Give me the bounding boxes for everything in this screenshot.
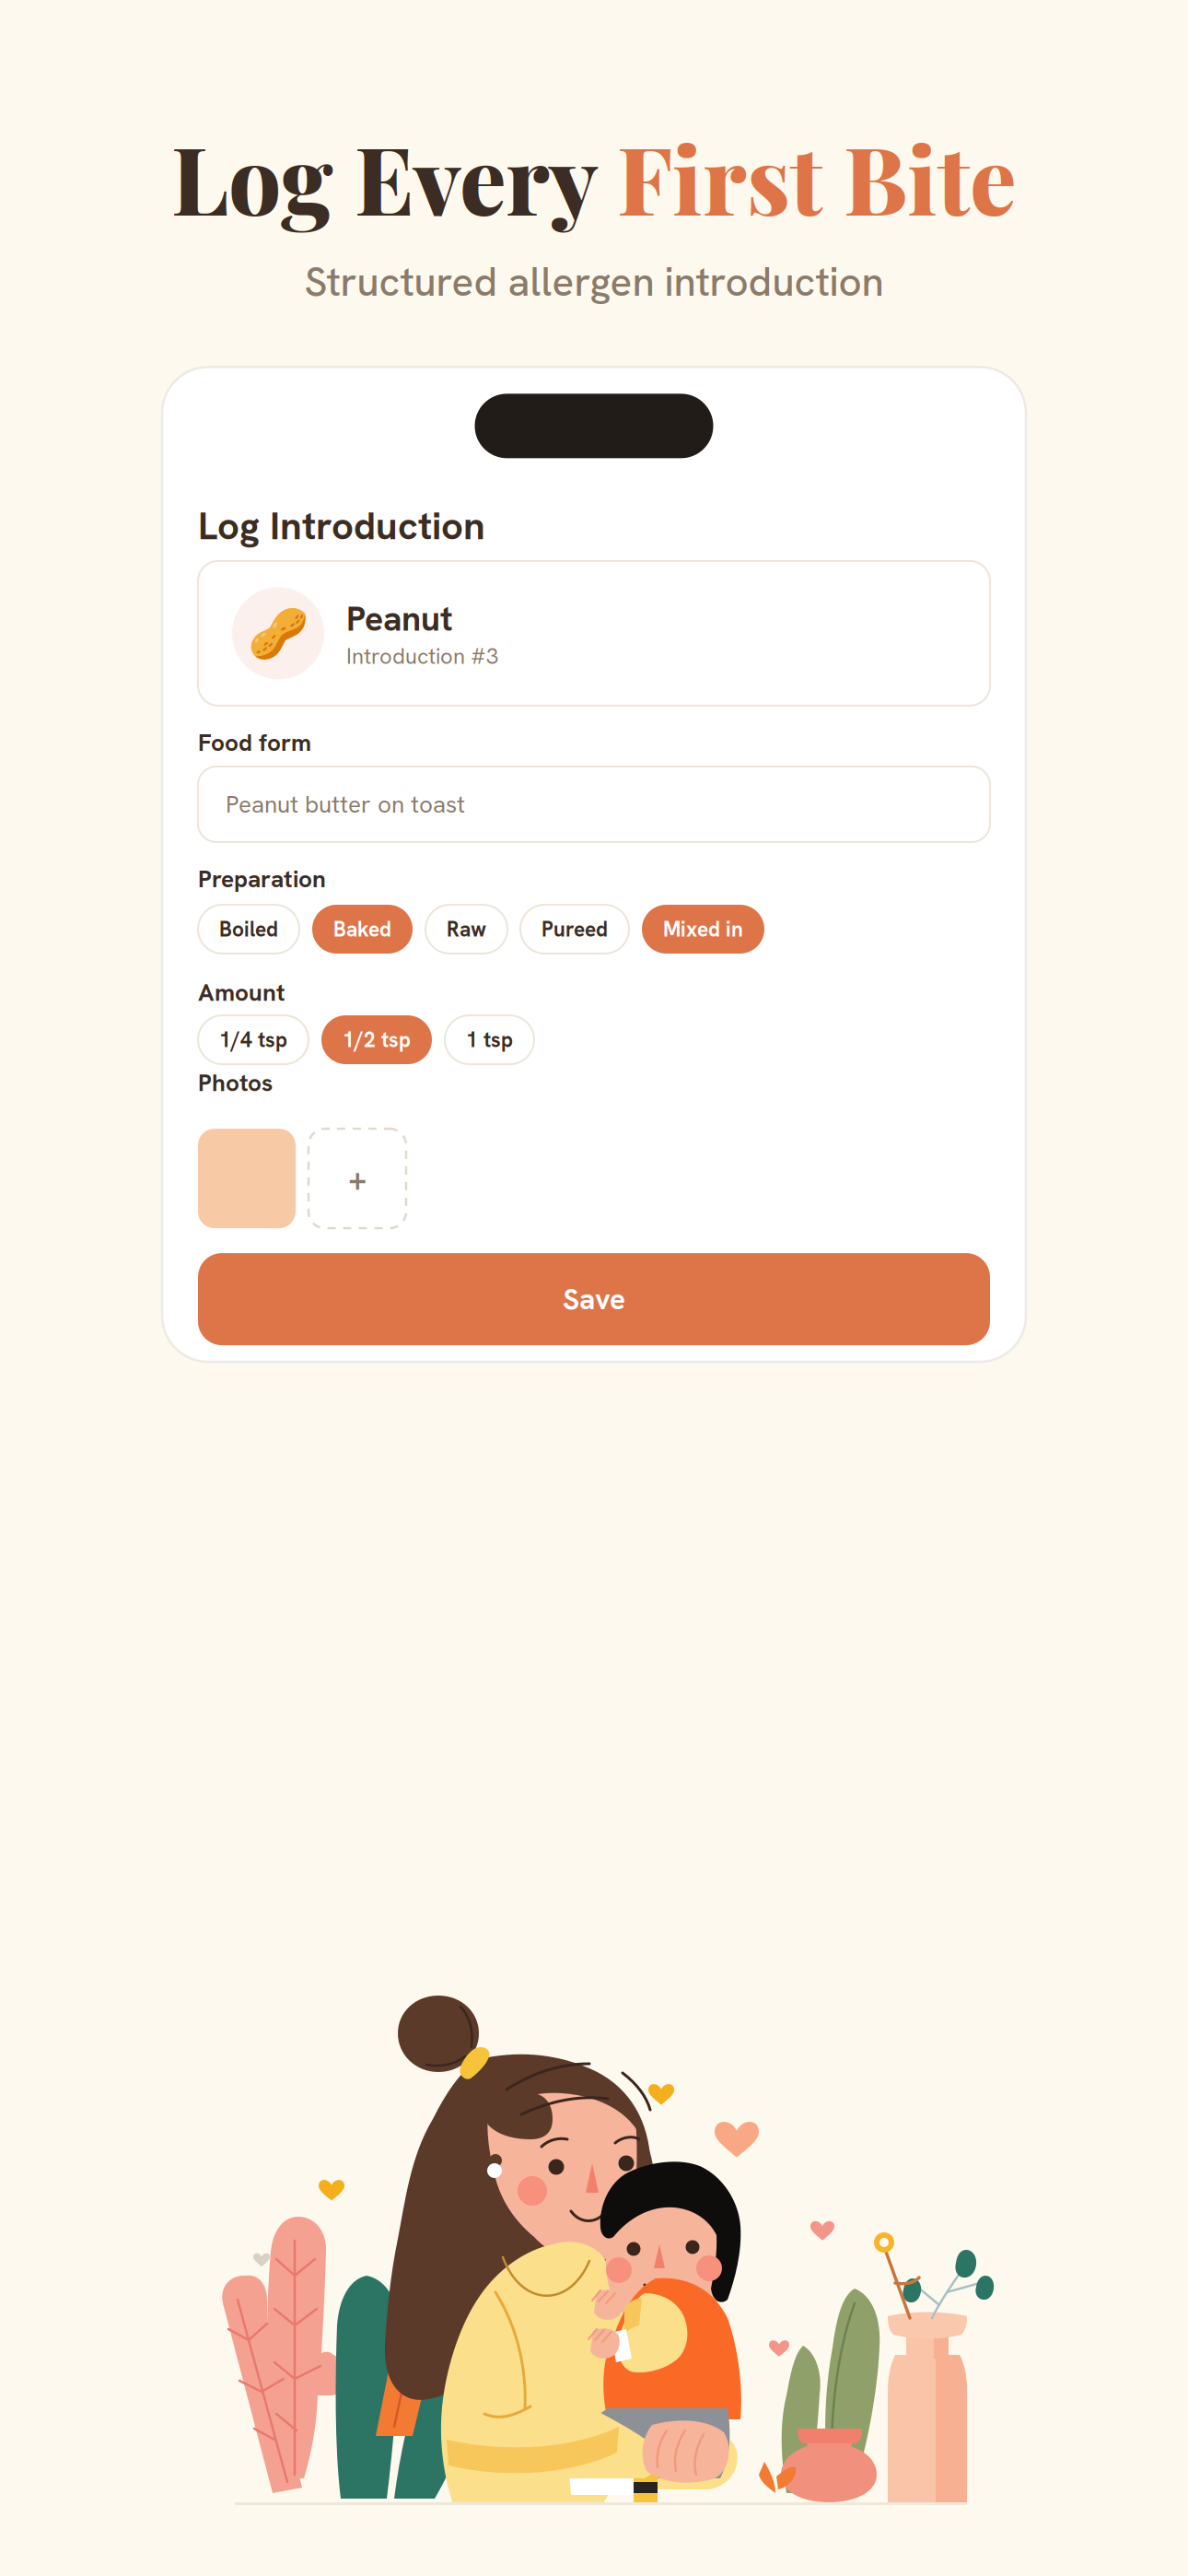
button[interactable]: Pureed bbox=[520, 905, 629, 954]
staticText: Raw bbox=[447, 916, 486, 943]
button[interactable]: Raw bbox=[425, 905, 507, 954]
staticText: First Bite bbox=[617, 115, 1017, 239]
staticText: Preparation bbox=[198, 863, 326, 895]
button[interactable]: Mixed in bbox=[642, 905, 764, 954]
button[interactable]: Save bbox=[198, 1253, 990, 1345]
staticText: 1/2 tsp bbox=[343, 1026, 411, 1053]
staticText: 🥜 bbox=[248, 605, 309, 662]
staticText: 1/4 tsp bbox=[219, 1026, 287, 1053]
staticText: Amount bbox=[198, 977, 285, 1008]
staticText: Peanut bbox=[346, 596, 453, 641]
button[interactable]: 1/2 tsp bbox=[321, 1015, 432, 1064]
button[interactable]: Add photo bbox=[309, 1129, 406, 1228]
staticText: 1 tsp bbox=[466, 1026, 513, 1053]
staticText: Photos bbox=[198, 1067, 273, 1098]
button[interactable]: Baked bbox=[312, 905, 413, 954]
staticText: Pureed bbox=[542, 916, 608, 943]
staticText: Save bbox=[563, 1280, 625, 1318]
staticText: Log Introduction bbox=[198, 501, 485, 551]
staticText: Boiled bbox=[219, 916, 278, 943]
staticText: Peanut butter on toast bbox=[226, 789, 465, 820]
button[interactable]: 1 tsp bbox=[445, 1015, 534, 1064]
staticText: Baked bbox=[333, 916, 391, 943]
button[interactable]: 1/4 tsp bbox=[198, 1015, 309, 1064]
button[interactable]: Boiled bbox=[198, 905, 299, 954]
staticText: Food form bbox=[198, 727, 311, 758]
staticText: + bbox=[349, 1158, 366, 1199]
staticText: Introduction #3 bbox=[346, 642, 498, 670]
staticText: Structured allergen introduction bbox=[304, 255, 884, 308]
staticText: Mixed in bbox=[663, 916, 743, 943]
staticText: Log Every bbox=[171, 115, 617, 239]
